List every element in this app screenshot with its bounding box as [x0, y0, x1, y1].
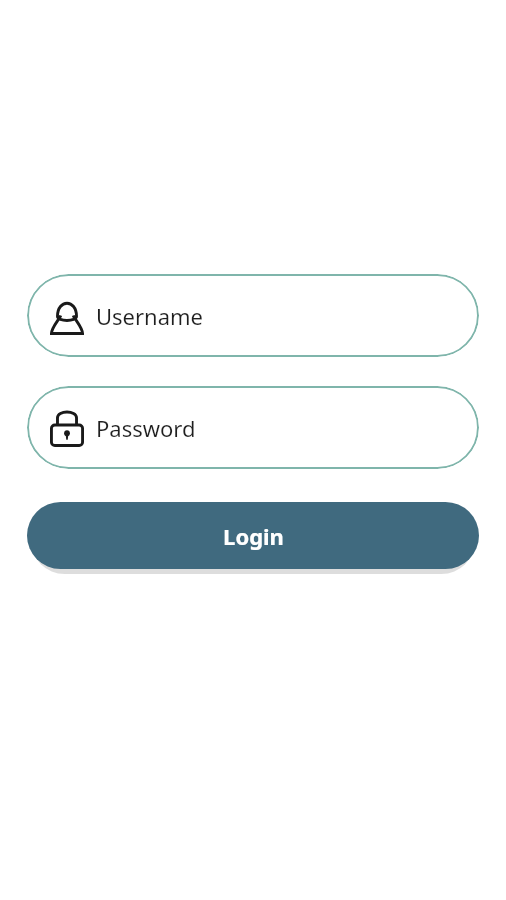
button[interactable]: Password [27, 386, 479, 469]
staticText: Login [223, 521, 284, 551]
staticText: Password [96, 413, 196, 443]
staticText: Username [96, 301, 204, 331]
button[interactable]: Username [27, 274, 479, 357]
button[interactable]: Login [27, 502, 479, 569]
